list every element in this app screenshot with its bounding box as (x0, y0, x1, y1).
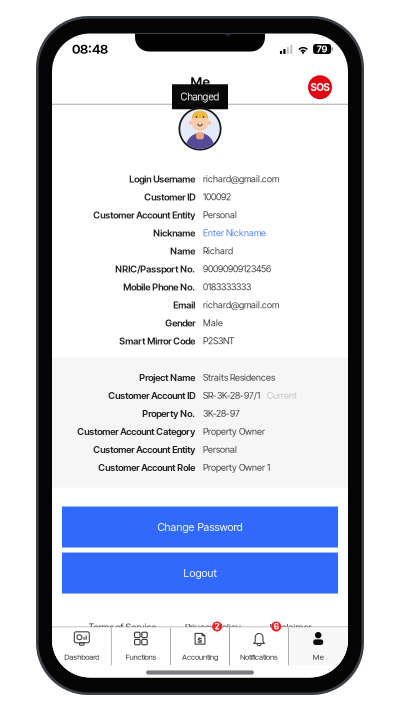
button[interactable]: SOS (308, 75, 332, 99)
staticText: SOS (310, 81, 329, 93)
button[interactable]: Disclaimer (269, 621, 311, 633)
staticText: Customer Account Category (77, 426, 195, 437)
staticText: Privacy Policy (185, 621, 241, 633)
button[interactable]: Me (289, 627, 347, 665)
staticText: Personal (203, 209, 237, 220)
staticText: Property Owner 1 (203, 462, 270, 473)
staticText: 0183333333 (203, 281, 251, 292)
staticText: 2 (215, 621, 220, 631)
staticText: 6 (274, 621, 279, 631)
staticText: SR-3K-28-97/1 (203, 390, 260, 401)
staticText: Current (267, 390, 297, 401)
staticText: Richard (203, 245, 233, 256)
button[interactable]: Dashboard (53, 627, 111, 665)
staticText: Nickname (153, 227, 195, 239)
staticText: NRIC/Passport No. (115, 263, 195, 275)
staticText: Customer Account Role (98, 462, 195, 473)
staticText: Personal (203, 444, 237, 455)
staticText: Male (203, 317, 223, 328)
staticText: 08:48 (72, 41, 108, 57)
staticText: richard@gmail.com (203, 299, 279, 310)
staticText: Changed (180, 91, 219, 103)
staticText: Property No. (142, 408, 195, 419)
staticText: Accounting (182, 652, 218, 661)
staticText: Notifications (240, 652, 278, 661)
staticText: 90090909123456 (203, 263, 271, 274)
staticText: Dashboard (64, 652, 99, 661)
staticText: Me (313, 652, 324, 661)
staticText: Enter Nickname (203, 227, 266, 238)
staticText: 3K-28-97 (203, 408, 240, 419)
staticText: Customer ID (144, 191, 195, 203)
staticText: Change Password (157, 520, 242, 533)
staticText: Customer Account Entity (93, 209, 195, 221)
button[interactable]: Privacy Policy (185, 621, 241, 633)
staticText: Customer Account ID (108, 390, 195, 401)
staticText: Me (190, 73, 209, 89)
staticText: $ (197, 635, 202, 644)
staticText: Customer Account Entity (93, 444, 195, 455)
staticText: richard@gmail.com (203, 173, 279, 184)
staticText: Disclaimer (269, 621, 311, 633)
button[interactable]: Terms of Service (88, 621, 156, 633)
button[interactable]: Logout (62, 552, 338, 593)
staticText: Logout (183, 566, 216, 579)
staticText: Terms of Service (88, 621, 156, 633)
staticText: P2S3NT (203, 335, 234, 346)
staticText: 79 (317, 43, 328, 55)
staticText: Email (173, 299, 195, 311)
button[interactable]: Notifications (230, 627, 288, 665)
staticText: Mobile Phone No. (123, 281, 195, 293)
staticText: Login Username (129, 173, 195, 185)
staticText: Name (170, 245, 195, 257)
button[interactable]: Change Password (62, 506, 338, 547)
staticText: Straits Residences (203, 372, 275, 383)
button[interactable]: Functions (112, 627, 170, 665)
staticText: Functions (125, 652, 156, 661)
staticText: 100092 (203, 191, 231, 202)
staticText: Project Name (139, 372, 195, 383)
staticText: Property Owner (203, 426, 265, 437)
button[interactable]: $ (171, 627, 229, 665)
staticText: Gender (165, 317, 195, 329)
staticText: Smart Mirror Code (119, 335, 195, 347)
